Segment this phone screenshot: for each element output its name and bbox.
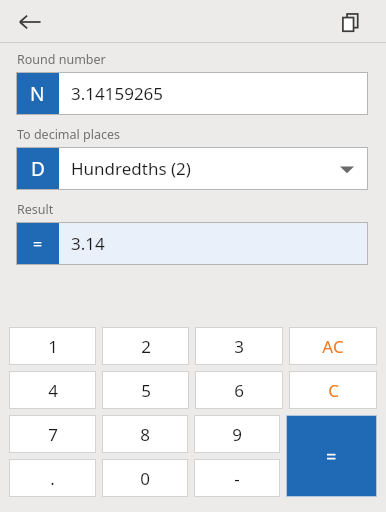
staticText: 0 [140, 467, 150, 490]
staticText: 2 [141, 335, 151, 358]
staticText: . [50, 467, 55, 490]
staticText: 3.14159265 [71, 82, 368, 105]
button[interactable]: 5 [102, 371, 189, 409]
button[interactable]: 4 [9, 371, 96, 409]
button[interactable]: N [16, 72, 368, 115]
button[interactable]: 9 [194, 415, 280, 453]
button[interactable]: C [289, 371, 377, 409]
button[interactable]: = [286, 415, 377, 497]
staticText: To decimal places [17, 126, 120, 143]
staticText: 4 [48, 379, 58, 402]
button[interactable]: Copy [332, 4, 368, 40]
staticText: Round number [17, 51, 106, 68]
button[interactable]: 7 [9, 415, 96, 453]
button[interactable]: D [16, 147, 368, 190]
staticText: 1 [48, 335, 58, 358]
button[interactable]: 2 [102, 327, 189, 365]
staticText: 5 [141, 379, 151, 402]
staticText: AC [322, 335, 344, 358]
button[interactable]: 3 [195, 327, 283, 365]
staticText: D [31, 156, 45, 182]
button[interactable]: . [9, 459, 96, 497]
staticText: 8 [140, 423, 150, 446]
staticText: C [328, 379, 339, 402]
staticText: Result [17, 201, 54, 218]
button[interactable]: 8 [102, 415, 188, 453]
button[interactable]: - [194, 459, 280, 497]
button[interactable]: 0 [102, 459, 188, 497]
staticText: Hundredths (2) [71, 157, 340, 180]
staticText: 3.14 [71, 232, 368, 255]
button[interactable]: AC [289, 327, 377, 365]
button[interactable]: 1 [9, 327, 96, 365]
button[interactable]: 6 [195, 371, 283, 409]
button[interactable]: Back [10, 2, 50, 42]
staticText: = [33, 233, 43, 255]
staticText: 3 [234, 335, 244, 358]
staticText: 9 [232, 423, 242, 446]
staticText: N [30, 81, 45, 107]
button[interactable]: = [16, 222, 368, 265]
staticText: = [326, 444, 337, 469]
staticText: 7 [48, 423, 58, 446]
staticText: 6 [234, 379, 244, 402]
staticText: - [234, 467, 240, 490]
